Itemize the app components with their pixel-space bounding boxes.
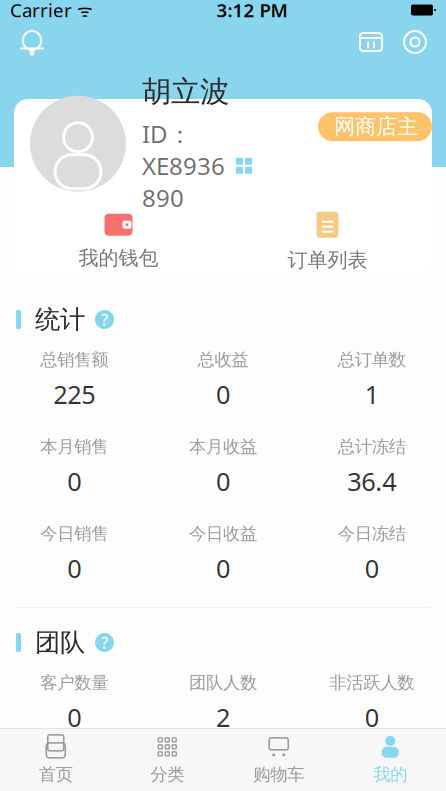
staticText: 0: [216, 551, 230, 585]
staticText: ᯤ: [72, 0, 93, 21]
staticText: ?: [101, 309, 108, 330]
staticText: 225: [53, 377, 95, 411]
staticText: 0: [216, 464, 230, 498]
staticText: 网商店主: [334, 114, 418, 140]
staticText: 今日冻结: [338, 523, 406, 544]
staticText: 1: [365, 377, 379, 411]
staticText: 胡立波: [142, 74, 229, 110]
staticText: 总订单数: [338, 349, 406, 370]
staticText: 总计冻结: [338, 436, 406, 457]
button[interactable]: Settings: [402, 29, 428, 55]
staticText: ID：XE8936890: [142, 118, 225, 214]
staticText: 总销售额: [40, 349, 108, 370]
staticText: 本月销售: [40, 436, 108, 457]
staticText: 订单列表: [287, 248, 367, 272]
staticText: 3:12 PM: [216, 0, 287, 22]
staticText: 团队: [35, 627, 85, 658]
staticText: 非活跃人数: [329, 672, 414, 693]
staticText: 购物车: [253, 764, 304, 785]
button[interactable]: Help: [95, 310, 114, 329]
staticText: ?: [101, 632, 108, 653]
button[interactable]: 网商店主: [318, 112, 432, 141]
button[interactable]: Help: [95, 633, 114, 652]
staticText: 0: [67, 464, 81, 498]
button[interactable]: 订单列表: [223, 204, 432, 278]
staticText: 今日销售: [40, 523, 108, 544]
staticText: 0: [216, 377, 230, 411]
button[interactable]: Store: [358, 29, 384, 55]
staticText: 本月收益: [189, 436, 257, 457]
staticText: 今日收益: [189, 523, 257, 544]
staticText: 分类: [150, 764, 184, 785]
staticText: 我的: [373, 764, 407, 785]
staticText: 客户数量: [40, 672, 108, 693]
staticText: 2: [216, 700, 230, 734]
staticText: Carrier: [10, 0, 72, 22]
button[interactable]: 购物车: [223, 728, 334, 791]
button[interactable]: 我的: [334, 728, 446, 791]
button[interactable]: 我的钱包: [14, 206, 223, 276]
button[interactable]: Notifications: [18, 28, 46, 56]
staticText: 36.4: [347, 464, 396, 498]
staticText: 0: [67, 551, 81, 585]
staticText: 我的钱包: [78, 246, 158, 270]
staticText: 首页: [39, 764, 73, 785]
staticText: 0: [365, 700, 379, 734]
button[interactable]: 分类: [111, 728, 223, 791]
staticText: 0: [67, 700, 81, 734]
staticText: 总收益: [197, 349, 248, 370]
staticText: 团队人数: [189, 672, 257, 693]
button[interactable]: 首页: [0, 728, 111, 791]
staticText: 0: [365, 551, 379, 585]
staticText: 统计: [35, 304, 85, 335]
